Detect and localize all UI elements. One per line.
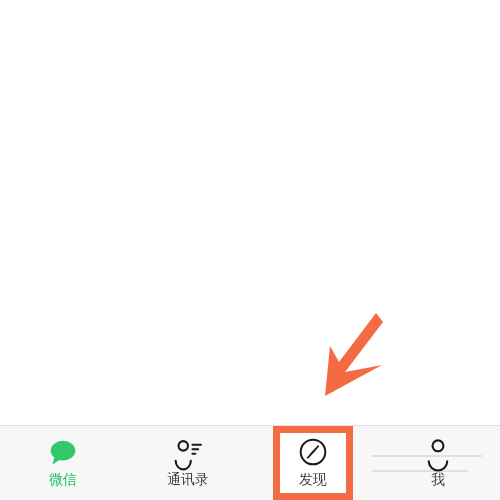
button[interactable]: Contacts [125, 426, 250, 500]
staticText: 我 [431, 471, 445, 489]
other: WeChat [49, 438, 77, 466]
other: Contacts [174, 438, 202, 466]
other: Me [424, 438, 452, 466]
button[interactable]: Me [375, 426, 500, 500]
button[interactable]: WeChat [0, 426, 125, 500]
staticText: 通讯录 [167, 471, 209, 489]
button[interactable]: Discover [280, 433, 346, 493]
staticText: 微信 [49, 471, 77, 489]
other: Discover [299, 438, 327, 466]
staticText: 发现 [299, 471, 327, 489]
